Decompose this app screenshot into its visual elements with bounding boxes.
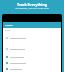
staticText: Today [5,29,11,32]
staticText: Tracker [5,24,13,27]
staticText: Log workouts, meals and habits easily [15,7,49,10]
button[interactable] [3,54,61,60]
button[interactable] [3,60,61,66]
button[interactable] [3,34,61,41]
button[interactable] [3,66,61,72]
staticText: Track Everything [17,2,48,7]
button[interactable] [3,46,61,52]
